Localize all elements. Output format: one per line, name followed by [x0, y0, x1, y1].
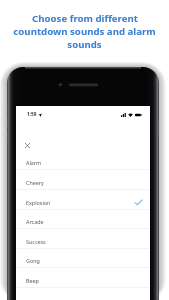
staticText: Alarm — [26, 159, 42, 166]
staticText: 1:59 — [27, 111, 37, 118]
button[interactable]: Close — [19, 137, 35, 153]
button[interactable]: Success — [16, 229, 150, 249]
staticText: Success — [26, 238, 46, 245]
button[interactable]: Alarm — [16, 150, 150, 170]
staticText: Gong — [26, 257, 40, 264]
button[interactable]: Explosion — [16, 190, 150, 210]
staticText: Choose from different — [32, 12, 138, 25]
staticText: Cheery — [26, 179, 44, 186]
staticText: sounds — [67, 38, 102, 51]
staticText: Beep — [26, 277, 39, 284]
staticText: Arcade — [26, 218, 44, 225]
button[interactable]: Arcade — [16, 209, 150, 229]
staticText: Explosion — [26, 199, 51, 206]
button[interactable]: Beep — [16, 268, 150, 288]
button[interactable]: Gong — [16, 248, 150, 268]
staticText: countdown sounds and alarm — [13, 25, 156, 38]
button[interactable]: Cheery — [16, 170, 150, 190]
